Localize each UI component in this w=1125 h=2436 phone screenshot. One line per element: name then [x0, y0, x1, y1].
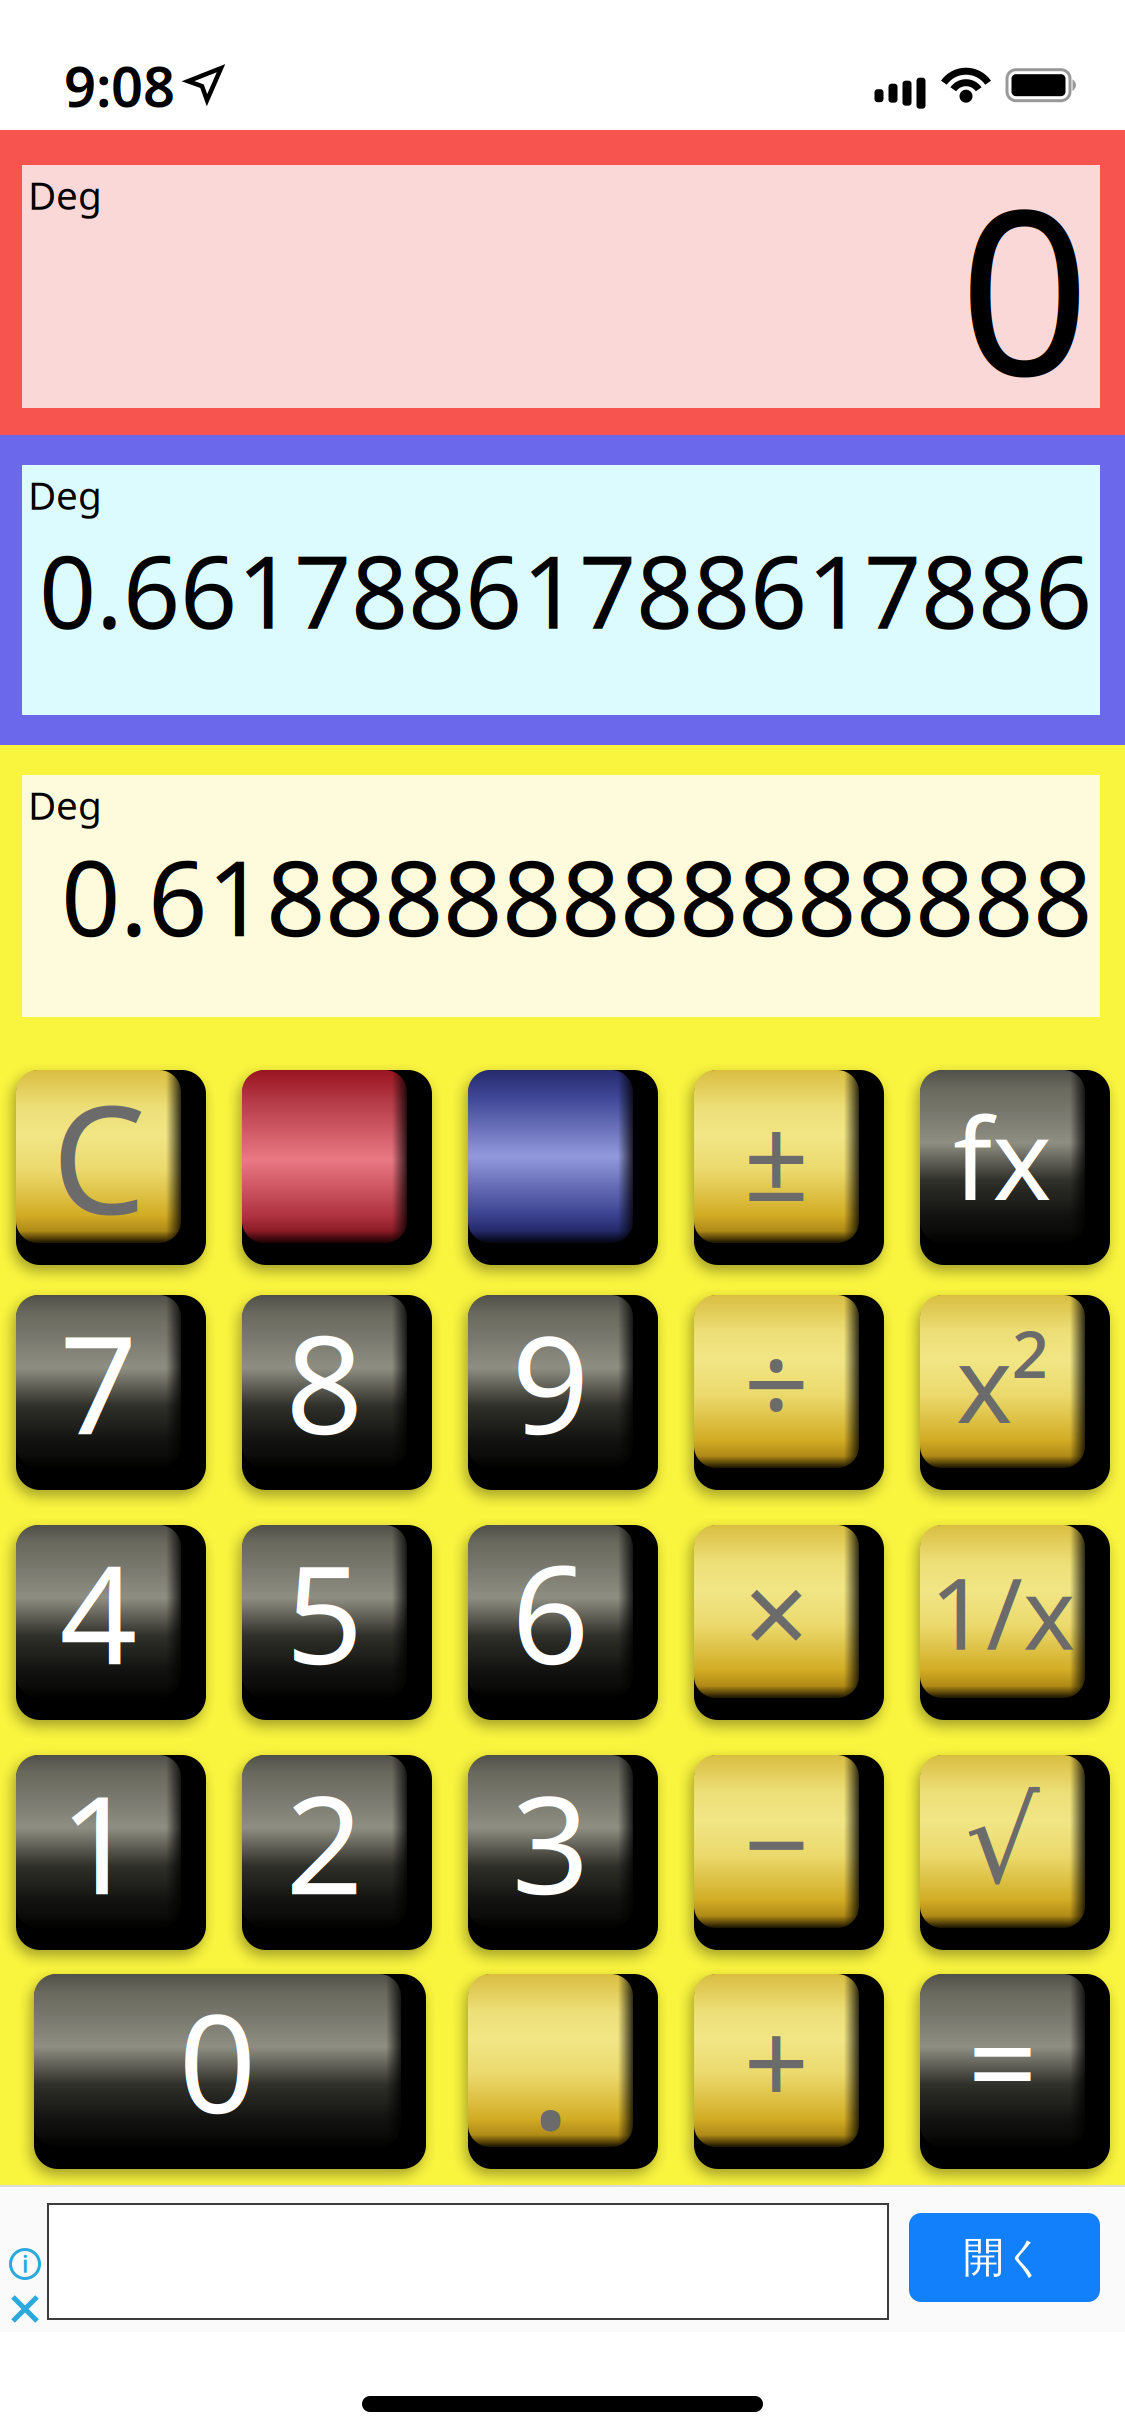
button[interactable]: × [694, 1525, 884, 1720]
staticText: 9 [511, 1291, 589, 1472]
staticText: 4 [59, 1521, 137, 1702]
staticText: ± [743, 1080, 809, 1233]
button[interactable]: fx [920, 1070, 1110, 1265]
staticText: 2 [285, 1751, 363, 1932]
staticText: 5 [285, 1521, 363, 1702]
staticText: 0 [178, 1970, 256, 2151]
staticText: x² [956, 1311, 1049, 1452]
staticText: C [51, 1057, 145, 1256]
staticText: Deg [28, 469, 102, 520]
button[interactable]: x² [920, 1295, 1110, 1490]
button[interactable]: 3 [468, 1755, 658, 1950]
button[interactable]: 7 [16, 1295, 206, 1490]
staticText: 3 [511, 1751, 589, 1932]
button[interactable]: 1 [16, 1755, 206, 1950]
button[interactable]: memory blue [468, 1070, 658, 1265]
staticText: 8 [285, 1291, 363, 1472]
button[interactable]: Close ad [11, 2295, 39, 2323]
button[interactable]: 5 [242, 1525, 432, 1720]
button[interactable]: 0 [34, 1974, 426, 2169]
staticText: 開く [963, 2232, 1046, 2283]
button[interactable]: Ad information [9, 2248, 41, 2280]
button[interactable]: 2 [242, 1755, 432, 1950]
button[interactable]: ÷ [694, 1295, 884, 1490]
staticText: 0 [959, 134, 1090, 439]
button[interactable]: ± [694, 1070, 884, 1265]
staticText: . [529, 1961, 572, 2174]
staticText: 0.6188888888888888 [61, 827, 1092, 965]
staticText: 9:08 [64, 48, 175, 122]
staticText: fx [953, 1081, 1052, 1232]
button[interactable]: 1/x [920, 1525, 1110, 1720]
button[interactable]: − [694, 1755, 884, 1950]
staticText: 7 [59, 1291, 137, 1472]
button[interactable]: memory red [242, 1070, 432, 1265]
button[interactable]: 6 [468, 1525, 658, 1720]
staticText: = [967, 1979, 1037, 2142]
staticText: ÷ [743, 1305, 809, 1458]
button[interactable]: C [16, 1070, 206, 1265]
staticText: Deg [28, 169, 102, 220]
staticText: i [22, 2249, 28, 2279]
staticText: √ [965, 1775, 1040, 1908]
staticText: 1/x [930, 1546, 1075, 1677]
button[interactable]: 9 [468, 1295, 658, 1490]
staticText: 1 [59, 1751, 137, 1932]
button[interactable]: = [920, 1974, 1110, 2169]
button[interactable]: 4 [16, 1525, 206, 1720]
button[interactable]: . [468, 1974, 658, 2169]
staticText: 6 [511, 1521, 589, 1702]
staticText: − [743, 1765, 809, 1918]
button[interactable]: √ [920, 1755, 1110, 1950]
button[interactable]: + [694, 1974, 884, 2169]
button[interactable]: 8 [242, 1295, 432, 1490]
button[interactable]: 開く [909, 2213, 1100, 2302]
staticText: × [743, 1535, 809, 1688]
staticText: 0.66178861788617886 [39, 524, 1092, 656]
staticText: + [743, 1984, 809, 2137]
staticText: Deg [28, 779, 102, 830]
